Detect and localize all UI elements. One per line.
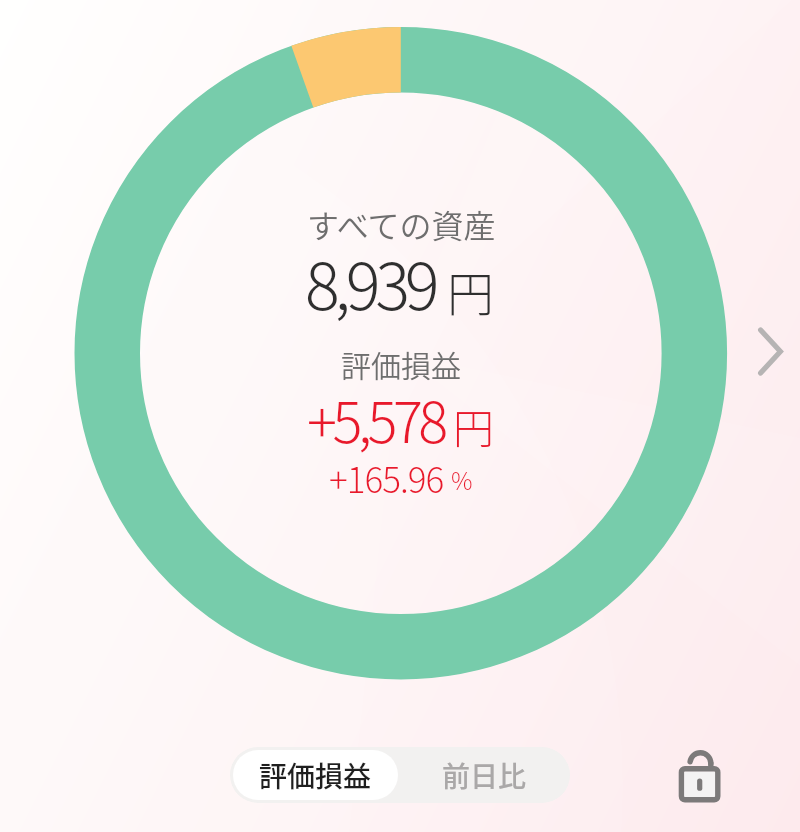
staticText: +5,578 xyxy=(307,378,444,459)
button[interactable]: 評価損益 xyxy=(233,750,398,800)
staticText: +165.96 xyxy=(329,452,444,503)
button[interactable]: Next portfolio xyxy=(744,313,796,365)
staticText: 評価損益 xyxy=(341,342,461,385)
staticText: 円 xyxy=(453,396,494,455)
staticText: 前日比 xyxy=(442,755,527,796)
staticText: すべての資産 xyxy=(307,201,496,247)
button[interactable]: 前日比 xyxy=(400,750,568,800)
staticText: 8,939 xyxy=(305,235,435,329)
button[interactable]: All assets 8,939 yen, gain 5,578 yen xyxy=(70,20,732,688)
button[interactable]: Unlock xyxy=(672,740,728,796)
staticText: 評価損益 xyxy=(259,755,372,796)
staticText: 円 xyxy=(447,256,494,324)
staticText: % xyxy=(451,462,473,497)
